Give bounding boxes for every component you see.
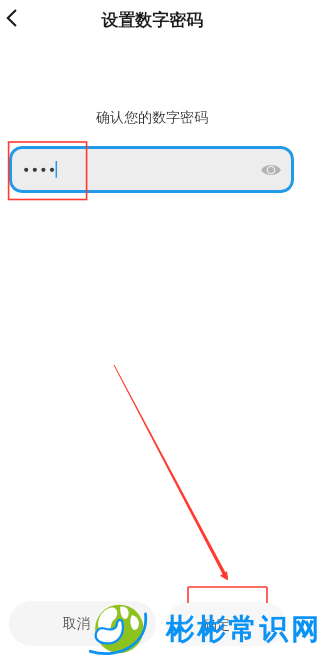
button[interactable]: Show password bbox=[257, 156, 285, 184]
button[interactable]: 取消 bbox=[9, 601, 156, 646]
button[interactable]: Show password bbox=[9, 146, 294, 193]
button[interactable]: 确定 bbox=[166, 602, 286, 646]
staticText: 确认您的数字密码 bbox=[96, 109, 208, 127]
staticText: 取消 bbox=[63, 615, 90, 632]
button[interactable]: Back bbox=[0, 2, 27, 34]
staticText: 彬彬常识网 bbox=[164, 612, 320, 647]
staticText: 设置数字密码 bbox=[101, 10, 203, 31]
staticText: 确定 bbox=[203, 616, 230, 633]
